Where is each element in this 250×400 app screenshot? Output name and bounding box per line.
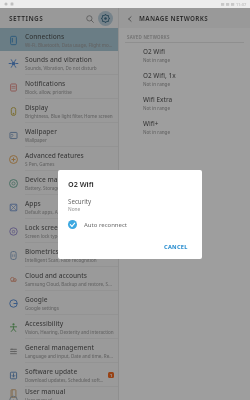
button[interactable]: Search	[83, 12, 97, 26]
staticText: Samsung Cloud, Backup and restore, Sma…	[25, 281, 114, 287]
staticText: Language and input, Date and time, Reset	[25, 353, 114, 359]
staticText: SAVED NETWORKS	[127, 34, 170, 40]
staticText: Software update	[25, 367, 78, 376]
staticText: User manual	[25, 397, 53, 400]
staticText: Device maintenance	[25, 175, 89, 184]
staticText: Wallpaper	[25, 137, 47, 143]
staticText: General management	[25, 343, 94, 352]
staticText: Apps	[25, 199, 41, 208]
button[interactable]: Google	[0, 291, 118, 314]
staticText: Notifications	[25, 79, 66, 88]
staticText: O2 Wifi, 1x	[143, 71, 176, 80]
staticText: User manual	[25, 387, 66, 396]
staticText: Brightness, Blue light filter, Home scre…	[25, 113, 113, 119]
staticText: Download updates, Scheduled soft…	[25, 377, 104, 383]
button[interactable]: Device maintenance	[0, 171, 118, 194]
staticText: SETTINGS	[9, 14, 44, 23]
staticText: Wi-Fi, Bluetooth, Data usage, Flight mod…	[25, 42, 114, 48]
staticText: Default apps, App permissions	[25, 209, 91, 215]
button[interactable]: O2 Wifi, 1x	[119, 67, 250, 91]
staticText: Wifi Extra	[143, 95, 173, 104]
staticText: Security	[68, 197, 92, 205]
button[interactable]: Sounds and vibration	[0, 51, 118, 74]
staticText: Block, allow, prioritise	[25, 89, 72, 95]
button[interactable]: Cloud and accounts	[0, 267, 118, 290]
staticText: Google settings	[25, 305, 59, 311]
staticText: None	[68, 206, 81, 213]
staticText: Not in range	[143, 57, 170, 63]
staticText: Vision, Hearing, Dexterity and interacti…	[25, 329, 114, 335]
button[interactable]: O2 Wifi	[119, 43, 250, 67]
button[interactable]: Wifi Extra	[119, 91, 250, 115]
staticText: Screen lock type, Find my mobile	[25, 233, 96, 239]
staticText: Wallpaper	[25, 127, 57, 136]
staticText: CANCEL	[164, 243, 188, 251]
button[interactable]: Notifications	[0, 75, 118, 98]
staticText: Biometrics	[25, 247, 59, 256]
staticText: Accessibility	[25, 319, 64, 328]
button[interactable]: Back	[123, 12, 136, 25]
button[interactable]: Advanced features	[0, 147, 118, 170]
staticText: 11:07	[236, 2, 247, 7]
button[interactable]: Display	[0, 99, 118, 122]
staticText: 1	[110, 373, 113, 378]
staticText: Cloud and accounts	[25, 271, 87, 280]
button[interactable]: User manual	[0, 387, 118, 400]
button[interactable]: CANCEL	[158, 240, 194, 254]
staticText: Display	[25, 103, 48, 112]
button[interactable]: Help	[98, 11, 113, 26]
staticText: MANAGE NETWORKS	[139, 14, 208, 23]
staticText: Battery, Storage, Memory	[25, 185, 81, 191]
button[interactable]: Wallpaper	[0, 123, 118, 146]
button[interactable]: Auto reconnect	[68, 220, 194, 229]
staticText: Google	[25, 295, 48, 304]
button[interactable]: Wifi+	[119, 115, 250, 139]
staticText: Wifi+	[143, 119, 159, 128]
button[interactable]: Software update	[0, 363, 118, 386]
staticText: Auto reconnect	[84, 221, 127, 229]
button[interactable]: Apps	[0, 195, 118, 218]
button[interactable]: Connections	[0, 28, 118, 51]
staticText: Not in range	[143, 81, 170, 87]
button[interactable]: General management	[0, 339, 118, 362]
staticText: Not in range	[143, 105, 170, 111]
button[interactable]: Biometrics	[0, 243, 118, 266]
staticText: S Pen, Games	[25, 161, 55, 167]
staticText: Lock screen and security	[25, 223, 103, 232]
staticText: O2 Wifi	[68, 179, 94, 189]
button[interactable]: Lock screen and security	[0, 219, 118, 242]
button[interactable]: Accessibility	[0, 315, 118, 338]
staticText: Sounds and vibration	[25, 55, 92, 64]
staticText: Intelligent Scan, Face recognition	[25, 257, 97, 263]
staticText: Not in range	[143, 129, 170, 135]
staticText: Sounds, Vibration, Do not disturb	[25, 65, 97, 71]
staticText: O2 Wifi	[143, 47, 166, 56]
staticText: Advanced features	[25, 151, 84, 160]
staticText: Connections	[25, 32, 65, 41]
